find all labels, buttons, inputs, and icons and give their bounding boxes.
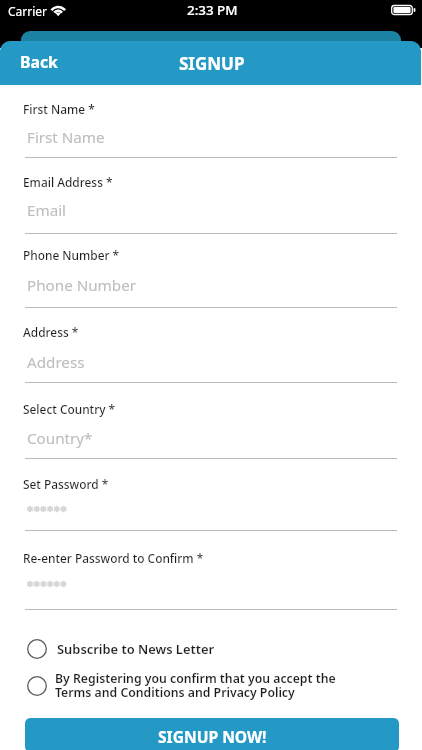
staticText: SIGNUP NOW! bbox=[158, 726, 267, 747]
staticText: 2:33 PM bbox=[187, 1, 238, 19]
staticText: Select Country * bbox=[23, 401, 116, 417]
staticText: Set Password * bbox=[23, 476, 109, 492]
staticText: Country* bbox=[27, 428, 93, 449]
staticText: First Name * bbox=[23, 101, 95, 117]
staticText: Phone Number * bbox=[23, 247, 120, 263]
staticText: Address bbox=[27, 352, 85, 373]
staticText: Carrier bbox=[8, 3, 48, 19]
staticText: Phone Number bbox=[27, 275, 136, 296]
staticText: SIGNUP bbox=[179, 52, 245, 75]
button[interactable]: Back bbox=[0, 46, 72, 80]
staticText: By Registering you confirm that you acce… bbox=[55, 670, 336, 700]
staticText: Email bbox=[27, 200, 67, 221]
staticText: Address * bbox=[23, 324, 79, 340]
staticText: Back bbox=[20, 51, 58, 73]
button[interactable]: SIGNUP NOW! bbox=[25, 718, 399, 750]
other: Wi-Fi bbox=[49, 3, 69, 17]
staticText: Email Address * bbox=[23, 174, 113, 190]
staticText: Subscribe to News Letter bbox=[57, 640, 215, 658]
staticText: Re-enter Password to Confirm * bbox=[23, 550, 204, 566]
button[interactable] bbox=[27, 674, 337, 698]
button[interactable]: Subscribe to News Letter bbox=[27, 637, 217, 661]
staticText: First Name bbox=[27, 127, 105, 148]
